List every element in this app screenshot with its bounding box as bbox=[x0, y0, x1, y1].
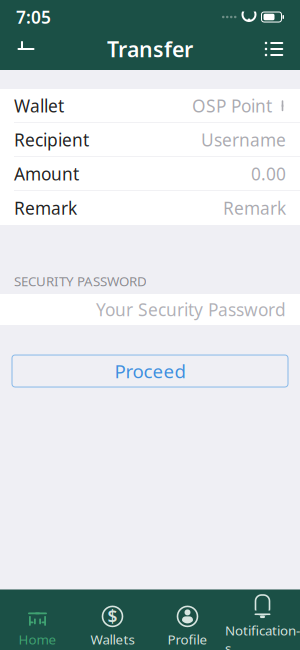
button[interactable]: Amount bbox=[0, 157, 300, 191]
staticText: Your Security Password bbox=[96, 298, 286, 321]
staticText: Amount bbox=[14, 162, 79, 185]
staticText: 0.00 bbox=[251, 162, 286, 185]
staticText: Home bbox=[18, 630, 56, 648]
staticText: Remark bbox=[14, 196, 77, 219]
button[interactable]: Recipient bbox=[0, 123, 300, 157]
button[interactable]: Profile bbox=[150, 598, 225, 650]
button[interactable]: Remark bbox=[0, 191, 300, 225]
button[interactable]: Notifications bbox=[225, 589, 300, 650]
staticText: Transfer bbox=[107, 35, 193, 63]
staticText: Profile bbox=[167, 630, 207, 648]
staticText: 7:05 bbox=[16, 5, 51, 28]
button[interactable]: Home bbox=[0, 598, 75, 650]
staticText: Recipient bbox=[14, 128, 89, 151]
staticText: Proceed bbox=[114, 359, 185, 383]
button[interactable]: Proceed bbox=[12, 355, 288, 387]
staticText: Username bbox=[201, 128, 286, 151]
staticText: SECURITY PASSWORD bbox=[14, 272, 147, 290]
staticText: Notifications bbox=[225, 621, 300, 650]
button[interactable]: Your Security Password bbox=[0, 294, 300, 325]
button[interactable]: Wallet bbox=[0, 89, 300, 123]
staticText: OSP Point bbox=[192, 94, 272, 117]
staticText: Wallet bbox=[14, 94, 64, 117]
button[interactable]: Back bbox=[4, 29, 48, 69]
button[interactable]: Menu bbox=[252, 29, 296, 69]
staticText: Wallets bbox=[90, 630, 134, 648]
staticText: Remark bbox=[223, 196, 286, 219]
button[interactable]: $ bbox=[75, 598, 150, 650]
staticText: $ bbox=[107, 605, 117, 628]
